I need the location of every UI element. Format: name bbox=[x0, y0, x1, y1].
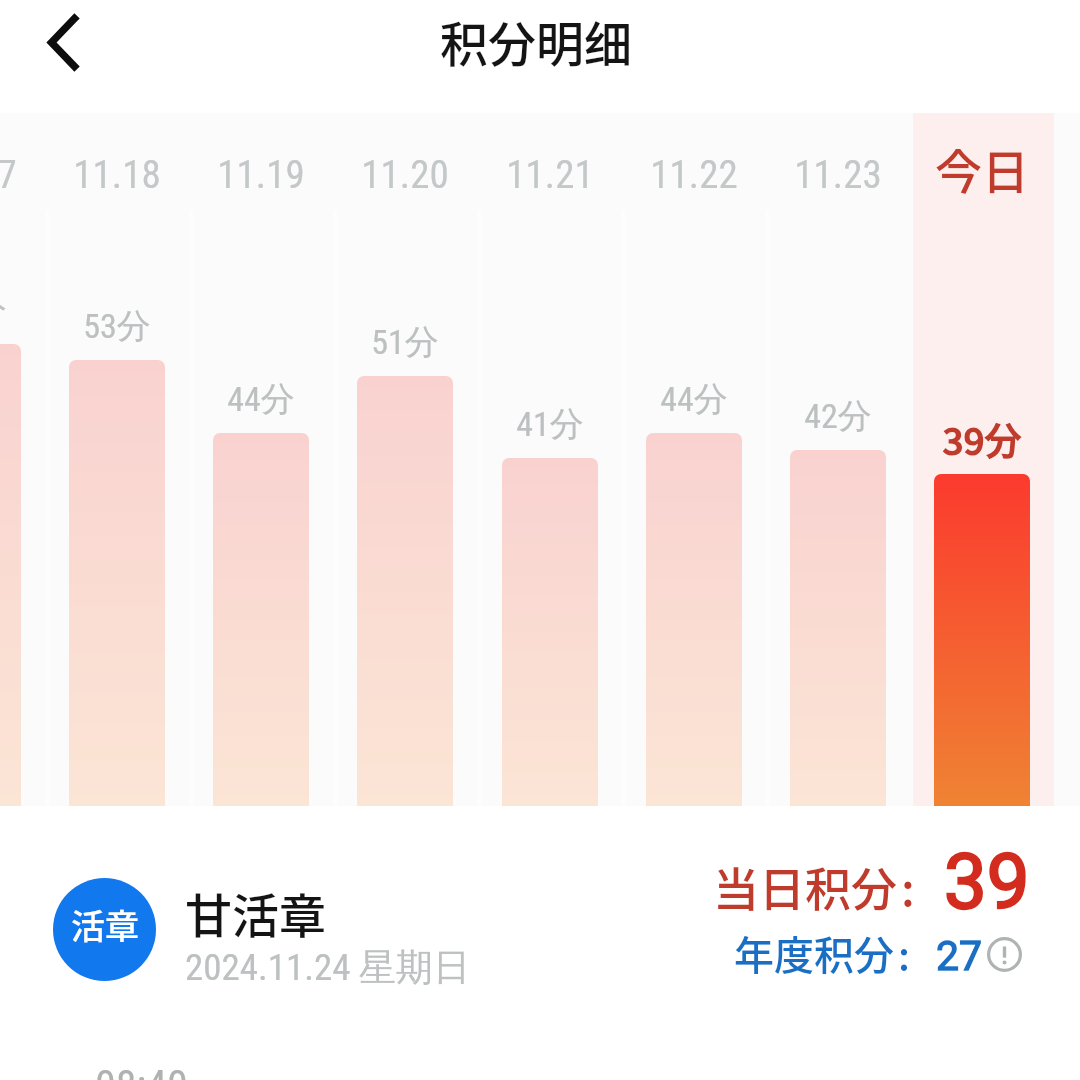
button[interactable] bbox=[646, 433, 742, 806]
button[interactable] bbox=[502, 458, 598, 806]
button[interactable] bbox=[790, 450, 886, 806]
button[interactable] bbox=[0, 344, 21, 806]
staticText: 53分 bbox=[83, 305, 151, 348]
staticText: 积分明细 bbox=[440, 6, 633, 76]
staticText: 11.22 bbox=[650, 152, 738, 198]
button[interactable] bbox=[934, 474, 1030, 806]
staticText: 11.21 bbox=[506, 152, 594, 198]
staticText: 11.18 bbox=[73, 152, 161, 198]
staticText: 11.23 bbox=[794, 152, 882, 198]
staticText: 甘活章 bbox=[185, 878, 326, 946]
staticText: 27 bbox=[936, 932, 983, 980]
staticText: 39分 bbox=[942, 412, 1022, 466]
staticText: 11.19 bbox=[217, 152, 305, 198]
staticText: 41分 bbox=[516, 403, 584, 446]
staticText: 2024.11.24 星期日 bbox=[185, 944, 471, 991]
staticText: 08:40 bbox=[95, 1061, 188, 1080]
staticText: 今日 bbox=[935, 134, 1029, 202]
staticText: 当日积分 bbox=[713, 853, 897, 920]
button[interactable] bbox=[213, 433, 309, 806]
staticText: 年度积分 bbox=[734, 924, 894, 982]
staticText: 11.17 bbox=[0, 152, 17, 198]
staticText: : bbox=[901, 853, 915, 920]
staticText: 55分 bbox=[0, 289, 7, 332]
button[interactable]: Back bbox=[16, 0, 112, 100]
button[interactable] bbox=[357, 376, 453, 806]
staticText: 44分 bbox=[660, 378, 728, 421]
staticText: 39 bbox=[944, 837, 1030, 926]
button[interactable]: 活章 bbox=[53, 878, 156, 981]
button[interactable] bbox=[69, 360, 165, 806]
staticText: : bbox=[898, 924, 910, 982]
staticText: 44分 bbox=[227, 378, 295, 421]
staticText: 42分 bbox=[804, 395, 872, 438]
staticText: 11.20 bbox=[361, 152, 449, 198]
staticText: 活章 bbox=[71, 900, 139, 949]
button[interactable]: Info bbox=[983, 933, 1025, 975]
staticText: 51分 bbox=[371, 321, 439, 364]
